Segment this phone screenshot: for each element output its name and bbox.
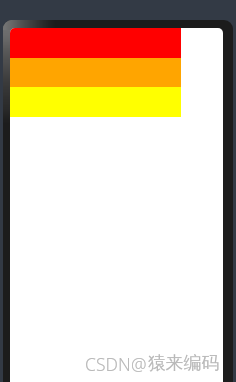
staticText: CSDN [85, 352, 131, 376]
staticText: @ [131, 352, 147, 376]
button[interactable]: Red block [10, 28, 181, 58]
staticText: 猿来编码 [148, 352, 220, 374]
